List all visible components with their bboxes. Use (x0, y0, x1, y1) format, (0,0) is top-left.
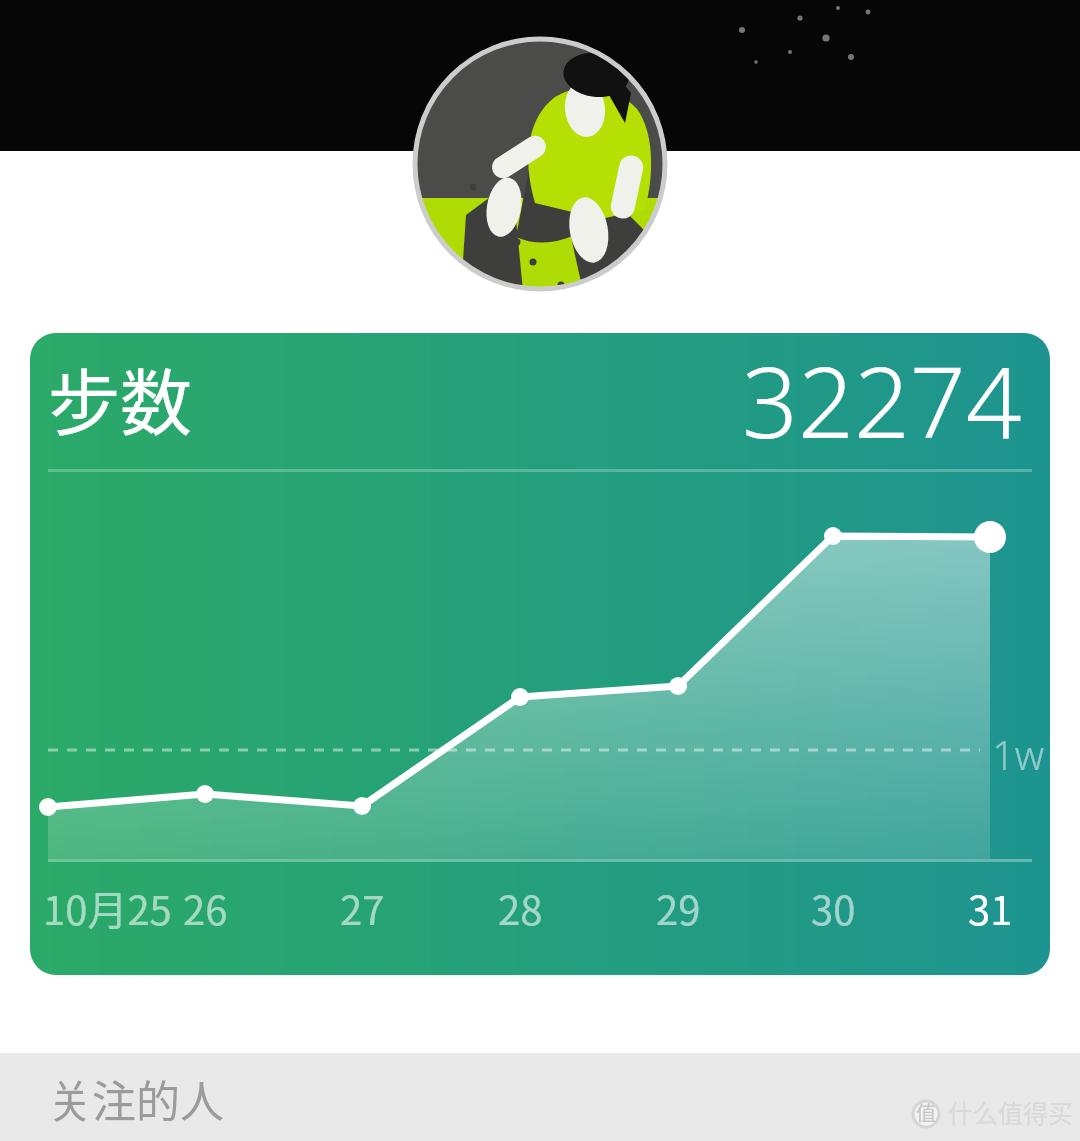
staticText: 30 (811, 879, 856, 937)
staticText: 28 (498, 879, 543, 937)
staticText: 32274 (742, 333, 1022, 466)
staticText: 31 (968, 879, 1013, 937)
staticText: 26 (183, 879, 228, 937)
staticText: 步数 (48, 345, 193, 449)
button[interactable]: 关注的人 (0, 1053, 1080, 1141)
staticText: 关注的人 (48, 1067, 224, 1131)
staticText: 1w (992, 727, 1045, 781)
staticText: 27 (340, 879, 385, 937)
staticText: 29 (656, 879, 701, 937)
button[interactable] (413, 37, 667, 291)
staticText: 什么值得买 (948, 1094, 1074, 1130)
button[interactable]: 步数 (30, 333, 1050, 975)
staticText: 10月25 (43, 879, 172, 937)
staticText: 值 (916, 1098, 936, 1127)
